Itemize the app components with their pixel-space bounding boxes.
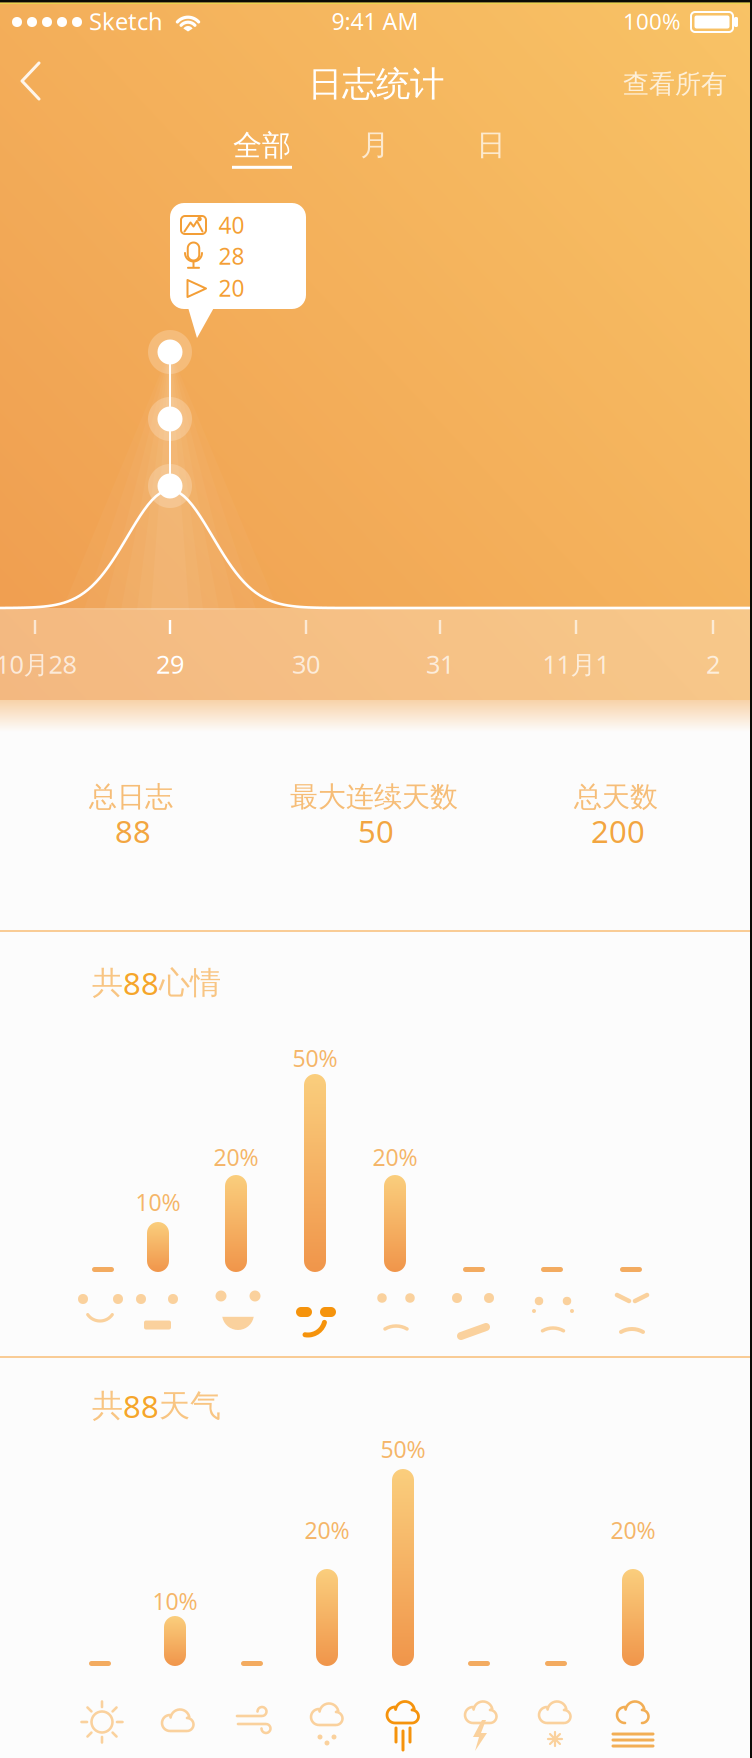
- staticText: 20%: [304, 1514, 349, 1546]
- staticText: 全部: [233, 127, 291, 164]
- button[interactable]: 月: [360, 127, 389, 163]
- staticText: 88: [123, 1385, 159, 1427]
- staticText: 心情: [159, 963, 221, 1002]
- button[interactable]: 查看所有: [623, 68, 727, 100]
- staticText: 总日志: [89, 779, 173, 815]
- button[interactable]: 日: [476, 127, 505, 163]
- button[interactable]: 11月1: [542, 647, 609, 681]
- button[interactable]: 29: [156, 647, 184, 681]
- staticText: 20%: [610, 1514, 655, 1546]
- staticText: 28: [218, 241, 244, 271]
- staticText: 20%: [372, 1141, 417, 1173]
- staticText: 10月28: [0, 647, 76, 681]
- staticText: 10%: [135, 1186, 180, 1218]
- staticText: 11月1: [542, 647, 609, 681]
- staticText: 50%: [380, 1433, 425, 1465]
- button[interactable]: [9, 59, 53, 103]
- staticText: 查看所有: [623, 68, 727, 100]
- staticText: 88: [115, 810, 151, 852]
- staticText: 月: [360, 127, 389, 163]
- staticText: 88: [123, 962, 159, 1004]
- button[interactable]: 31: [426, 647, 454, 681]
- button[interactable]: 2: [706, 647, 720, 681]
- staticText: 30: [292, 647, 320, 681]
- staticText: 100%: [623, 6, 681, 36]
- staticText: 40: [218, 210, 244, 240]
- staticText: 20: [218, 273, 244, 303]
- staticText: 2: [706, 647, 720, 681]
- staticText: 最大连续天数: [290, 779, 458, 815]
- staticText: Sketch: [89, 5, 163, 37]
- staticText: 29: [156, 647, 184, 681]
- staticText: 共: [92, 963, 123, 1002]
- button[interactable]: 30: [292, 647, 320, 681]
- staticText: 共: [92, 1386, 123, 1425]
- staticText: 20%: [213, 1141, 258, 1173]
- staticText: 10%: [152, 1585, 197, 1617]
- button[interactable]: 10月28: [0, 647, 76, 681]
- staticText: 31: [426, 647, 454, 681]
- staticText: 总天数: [574, 779, 658, 815]
- staticText: 50%: [292, 1042, 337, 1074]
- staticText: 天气: [159, 1386, 221, 1425]
- staticText: 日: [476, 127, 505, 163]
- staticText: 9:41 AM: [331, 5, 418, 37]
- button[interactable]: 全部: [232, 127, 292, 169]
- staticText: 日志统计: [308, 62, 444, 106]
- staticText: 200: [591, 810, 645, 852]
- staticText: 50: [358, 810, 394, 852]
